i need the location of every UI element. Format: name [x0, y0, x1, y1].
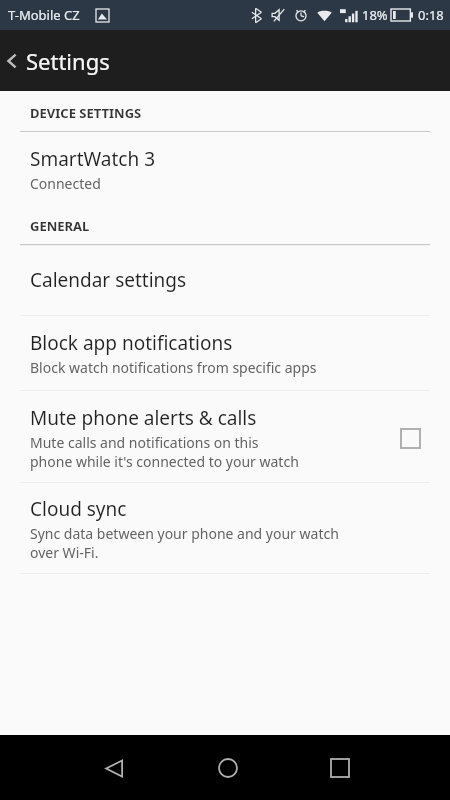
staticText: Mute phone alerts & calls — [30, 405, 257, 431]
staticText: Sync data between your phone and your wa… — [30, 524, 339, 562]
staticText: Block watch notifications from specific … — [30, 358, 317, 377]
staticText: Calendar settings — [30, 267, 187, 293]
staticText: GENERAL — [30, 217, 90, 235]
staticText: DEVICE SETTINGS — [30, 104, 142, 122]
staticText: 18% — [362, 6, 388, 24]
staticText: SmartWatch 3 — [30, 146, 156, 172]
staticText: 0:18 — [418, 6, 444, 24]
button[interactable]: Home — [204, 744, 252, 792]
button[interactable]: Calendar settings — [0, 246, 450, 315]
button[interactable]: Block app notifications — [0, 316, 450, 390]
staticText: Block app notifications — [30, 330, 233, 356]
button[interactable]: Back — [90, 744, 138, 792]
staticText: T-Mobile CZ — [8, 6, 80, 24]
staticText: Cloud sync — [30, 496, 127, 522]
staticText: Connected — [30, 174, 101, 193]
button[interactable]: Cloud sync — [0, 483, 450, 573]
button[interactable]: Mute phone alerts & calls toggle — [390, 418, 430, 458]
button[interactable]: Recent apps — [316, 744, 364, 792]
button[interactable]: Back — [0, 38, 120, 84]
button[interactable]: Mute phone alerts & calls — [0, 391, 450, 482]
staticText: Mute calls and notifications on this pho… — [30, 433, 299, 471]
button[interactable]: SmartWatch 3 — [0, 132, 450, 205]
staticText: Settings — [26, 46, 110, 76]
